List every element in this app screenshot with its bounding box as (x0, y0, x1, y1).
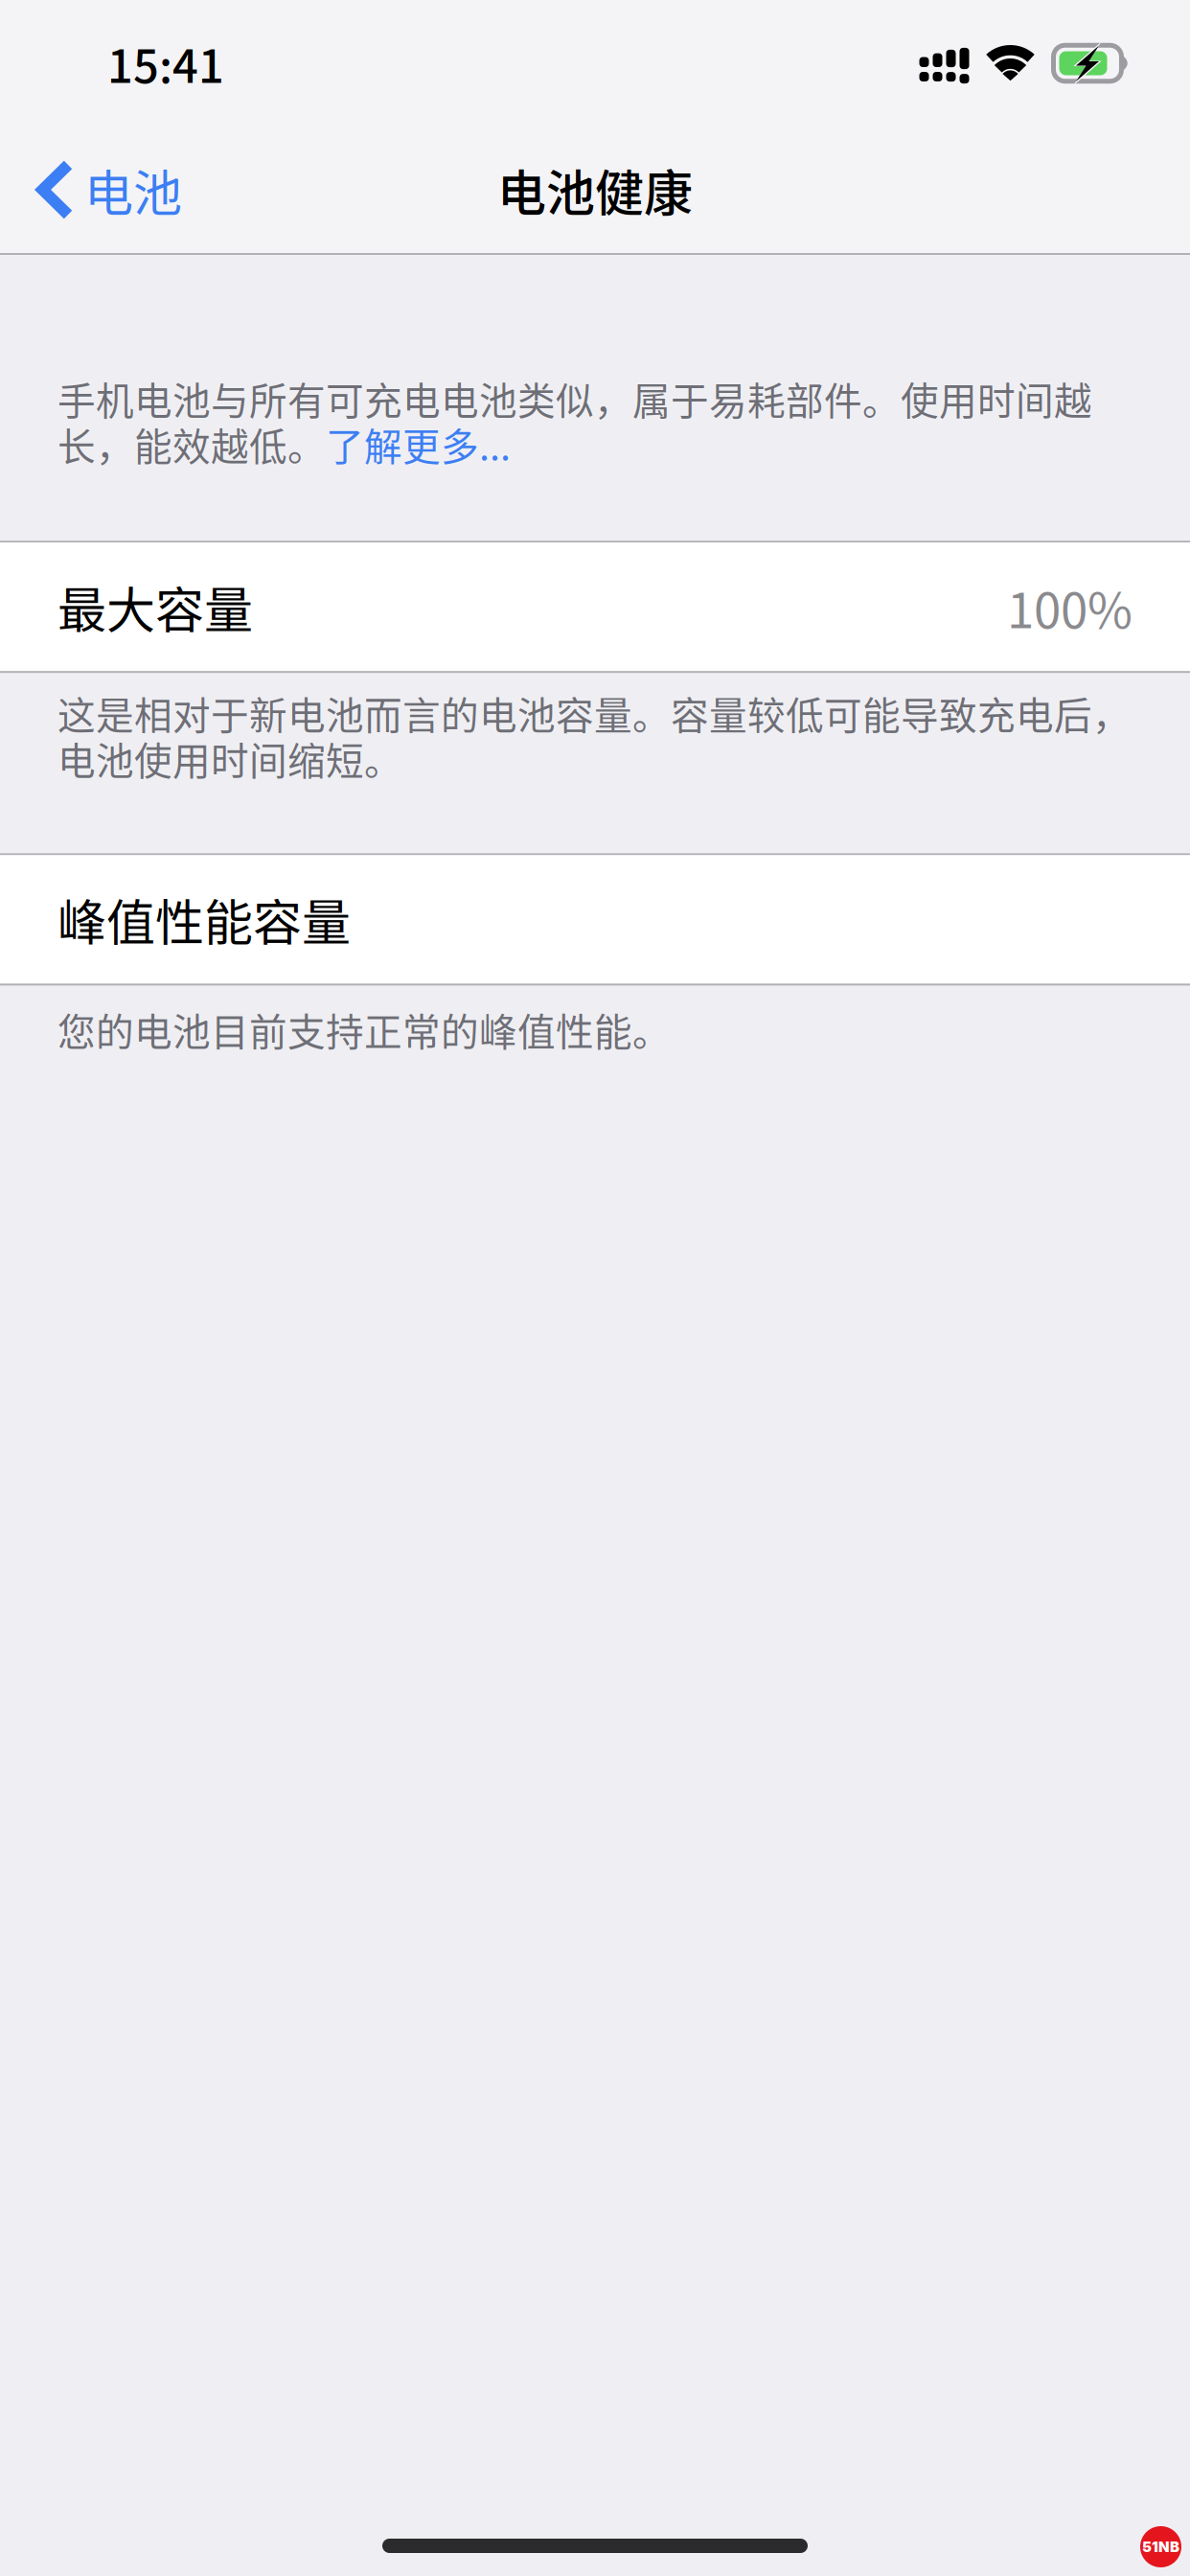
staticText: 15:41 (107, 31, 224, 96)
button[interactable]: 最大容量 (0, 543, 1190, 671)
button[interactable]: 了解更多... (326, 421, 511, 467)
button[interactable]: 峰值性能容量 (0, 855, 1190, 984)
staticText: 了解更多... (326, 421, 511, 467)
staticText: 峰值性能容量 (57, 884, 351, 955)
staticText: 最大容量 (57, 571, 253, 642)
staticText: 手机电池与所有可充电电池类似，属于易耗部件。使用时间越 (57, 376, 1092, 421)
staticText: 这是相对于新电池而言的电池容量。容量较低可能导致充电后， (57, 690, 1131, 736)
staticText: 电池健康 (497, 154, 693, 225)
staticText: 长，能效越低。 (57, 421, 326, 467)
staticText: 您的电池目前支持正常的峰值性能。 (57, 1007, 671, 1052)
staticText: 电池使用时间缩短。 (57, 736, 402, 781)
staticText: 51NB (1142, 2538, 1179, 2555)
staticText: 电池 (84, 154, 182, 225)
staticText: 100% (1007, 571, 1133, 642)
button[interactable]: 电池 (0, 126, 207, 253)
